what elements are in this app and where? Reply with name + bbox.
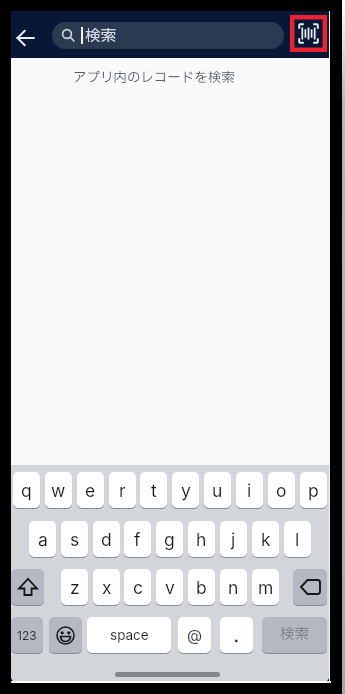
staticText: n [228, 577, 239, 598]
staticText: o [276, 480, 287, 501]
button[interactable]: o [268, 472, 295, 508]
button[interactable] [17, 29, 35, 47]
button[interactable]: e [77, 472, 104, 508]
button[interactable]: j [220, 521, 247, 557]
staticText: f [134, 529, 141, 550]
staticText: space [110, 627, 149, 643]
staticText: d [101, 529, 112, 550]
staticText: q [21, 480, 32, 501]
button[interactable]: s [61, 521, 88, 557]
button[interactable] [290, 15, 327, 52]
staticText: m [258, 577, 274, 598]
button[interactable]: b [188, 569, 215, 605]
staticText: g [164, 529, 175, 550]
button[interactable]: i [236, 472, 263, 508]
staticText: a [38, 529, 48, 550]
staticText: w [51, 480, 66, 501]
button[interactable]: p [300, 472, 327, 508]
button[interactable]: t [140, 472, 167, 508]
button[interactable]: z [61, 569, 88, 605]
button[interactable]: y [172, 472, 199, 508]
button[interactable]: n [220, 569, 247, 605]
staticText: c [133, 577, 143, 598]
staticText: x [102, 577, 112, 598]
button[interactable]: f [124, 521, 151, 557]
button[interactable]: 123 [11, 617, 43, 653]
staticText: z [70, 577, 80, 598]
button[interactable]: g [156, 521, 183, 557]
button[interactable]: a [29, 521, 56, 557]
button[interactable]: space [87, 617, 171, 653]
staticText: @ [187, 626, 202, 645]
staticText: y [181, 480, 191, 501]
button[interactable]: m [252, 569, 279, 605]
button[interactable]: d [93, 521, 120, 557]
button[interactable] [49, 617, 82, 653]
staticText: e [85, 480, 96, 501]
button[interactable]: 検索 [52, 22, 284, 49]
staticText: h [196, 529, 207, 550]
staticText: u [212, 480, 223, 501]
button[interactable] [293, 569, 327, 605]
button[interactable]: h [188, 521, 215, 557]
button[interactable]: v [156, 569, 183, 605]
staticText: 検索 [85, 25, 117, 48]
button[interactable]: l [284, 521, 311, 557]
button[interactable]: k [252, 521, 279, 557]
button[interactable]: @ [178, 617, 211, 653]
button[interactable]: . [220, 617, 253, 653]
button[interactable]: 検索 [262, 617, 327, 653]
button[interactable]: c [124, 569, 151, 605]
button[interactable]: w [45, 472, 72, 508]
staticText: . [234, 626, 239, 645]
button[interactable]: x [93, 569, 120, 605]
staticText: j [231, 529, 236, 550]
staticText: v [165, 577, 175, 598]
button[interactable] [11, 569, 44, 605]
staticText: p [308, 480, 319, 501]
staticText: r [119, 480, 126, 501]
staticText: k [261, 529, 271, 550]
button[interactable]: q [13, 472, 40, 508]
staticText: i [247, 480, 252, 501]
button[interactable]: r [109, 472, 136, 508]
button[interactable]: u [204, 472, 231, 508]
staticText: アプリ内のレコードを検索 [73, 68, 235, 88]
staticText: b [196, 577, 207, 598]
staticText: t [151, 480, 157, 501]
staticText: l [295, 529, 300, 550]
staticText: 123 [17, 628, 37, 643]
staticText: 検索 [280, 624, 309, 646]
staticText: s [70, 529, 80, 550]
